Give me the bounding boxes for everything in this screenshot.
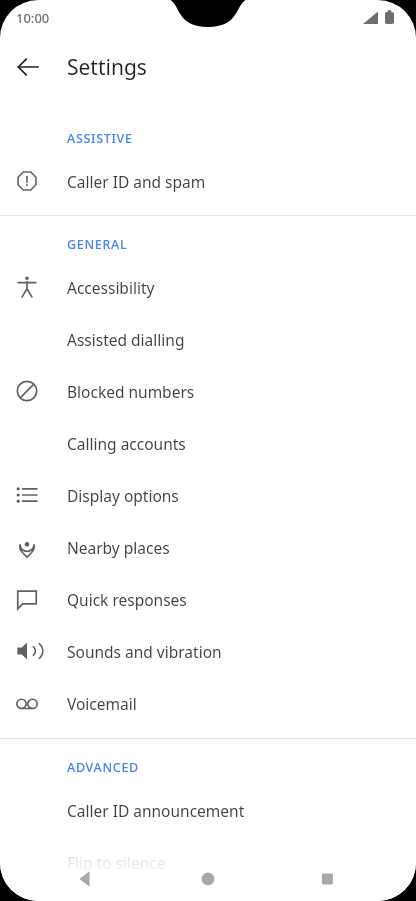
button[interactable]: Display options (0, 469, 416, 521)
staticText: ASSISTIVE (67, 130, 133, 147)
button[interactable]: Flip to silence (0, 836, 416, 888)
button[interactable]: Back (6, 45, 50, 89)
button[interactable]: Quick responses (0, 573, 416, 625)
button[interactable]: Caller ID and spam (0, 155, 416, 207)
button[interactable]: Blocked numbers (0, 365, 416, 417)
button[interactable]: Calling accounts (0, 417, 416, 469)
staticText: Nearby places (67, 537, 170, 558)
staticText: Blocked numbers (67, 381, 195, 402)
staticText: Accessibility (67, 277, 155, 298)
button[interactable]: Sounds and vibration (0, 625, 416, 677)
button[interactable]: Caller ID announcement (0, 784, 416, 836)
staticText: Display options (67, 485, 179, 506)
staticText: Settings (67, 53, 147, 82)
staticText: Caller ID and spam (67, 171, 206, 192)
button[interactable]: Voicemail (0, 677, 416, 729)
staticText: Quick responses (67, 589, 187, 610)
staticText: Caller ID announcement (67, 800, 245, 821)
button[interactable]: Accessibility (0, 261, 416, 313)
staticText: GENERAL (67, 236, 128, 253)
staticText: Sounds and vibration (67, 641, 222, 662)
staticText: Assisted dialling (67, 329, 185, 350)
staticText: Calling accounts (67, 433, 186, 454)
button[interactable]: Assisted dialling (0, 313, 416, 365)
button[interactable]: Nearby places (0, 521, 416, 573)
staticText: 10:00 (16, 9, 50, 27)
staticText: ADVANCED (67, 759, 139, 776)
staticText: Flip to silence (67, 852, 166, 873)
staticText: Voicemail (67, 693, 137, 714)
